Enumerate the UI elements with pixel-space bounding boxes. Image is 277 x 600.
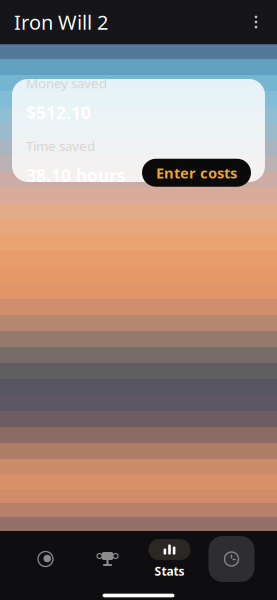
button[interactable]: More options xyxy=(239,2,273,42)
staticText: 38.10 hours xyxy=(26,164,126,187)
button[interactable]: Enter costs xyxy=(142,159,251,187)
staticText: Time saved xyxy=(26,137,95,155)
button[interactable]: Stats xyxy=(138,536,200,582)
staticText: Enter costs xyxy=(156,163,237,182)
button[interactable]: History xyxy=(200,536,262,582)
staticText: Stats xyxy=(154,563,184,579)
staticText: Iron Will 2 xyxy=(14,9,108,35)
button[interactable]: Achievements xyxy=(76,536,138,582)
staticText: Money saved xyxy=(26,74,107,92)
staticText: $512.10 xyxy=(26,101,91,124)
button[interactable]: Progress xyxy=(14,536,76,582)
